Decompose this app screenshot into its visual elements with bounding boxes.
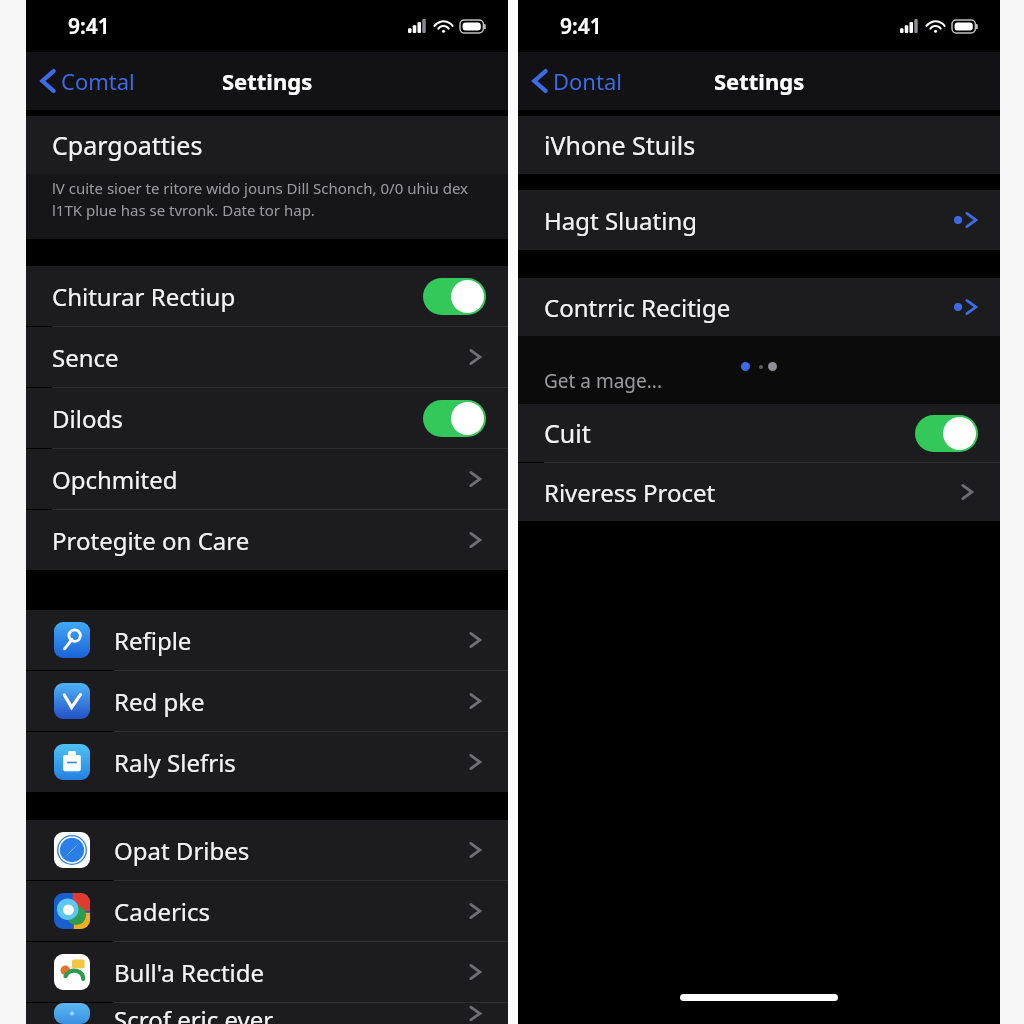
staticText: Opat Dribes [114,834,250,867]
button[interactable]: Raly Slefris [26,732,508,792]
staticText: iVhone Stuils [544,128,696,162]
staticText: Red pke [114,685,205,718]
button[interactable]: Dilods [26,388,508,448]
staticText: Scrof eric ever [114,1003,274,1024]
staticText: 9:41 [560,12,602,41]
button[interactable]: Contrric Recitige [518,278,1000,336]
staticText: Settings [222,66,313,96]
staticText: Get a mage... [544,368,663,394]
button[interactable]: Bull'a Rectide [26,942,508,1002]
button[interactable]: Refiple [26,610,508,670]
button[interactable]: Caderics [26,881,508,941]
button[interactable]: Chiturar Rectiup [26,266,508,326]
staticText: Sence [52,341,119,374]
button[interactable]: Sence [26,327,508,387]
button[interactable]: Toggle on [423,278,486,315]
button[interactable]: Cuit [518,404,1000,462]
staticText: Opchmited [52,463,178,496]
staticText: Raly Slefris [114,746,236,779]
staticText: Dilods [52,402,123,435]
staticText: Refiple [114,624,192,657]
staticText: Caderics [114,895,211,928]
staticText: lV cuite sioer te ritore wido jouns Dill… [52,178,469,221]
staticText: Comtal [61,66,135,96]
button[interactable]: Hagt Sluating [518,190,1000,250]
staticText: Cuit [544,416,591,450]
button[interactable]: Opat Dribes [26,820,508,880]
staticText: Chiturar Rectiup [52,280,236,313]
button[interactable]: Cpargoatties [26,116,508,174]
button[interactable]: Scrof eric ever [26,1003,508,1024]
button[interactable]: Opchmited [26,449,508,509]
button[interactable]: iVhone Stuils [518,116,1000,174]
staticText: Bull'a Rectide [114,956,265,989]
button[interactable]: Toggle on [915,415,978,452]
staticText: Riveress Procet [544,476,716,509]
button[interactable]: Riveress Procet [518,463,1000,521]
staticText: 9:41 [68,12,110,41]
staticText: Dontal [553,66,622,96]
staticText: Hagt Sluating [544,204,698,237]
button[interactable]: Dontal [518,60,630,102]
button[interactable]: Comtal [26,60,143,102]
staticText: Settings [714,66,805,96]
staticText: Protegite on Care [52,524,250,557]
staticText: Cpargoatties [52,128,203,162]
button[interactable]: Red pke [26,671,508,731]
button[interactable]: Toggle on [423,400,486,437]
button[interactable]: Protegite on Care [26,510,508,570]
staticText: Contrric Recitige [544,291,731,324]
